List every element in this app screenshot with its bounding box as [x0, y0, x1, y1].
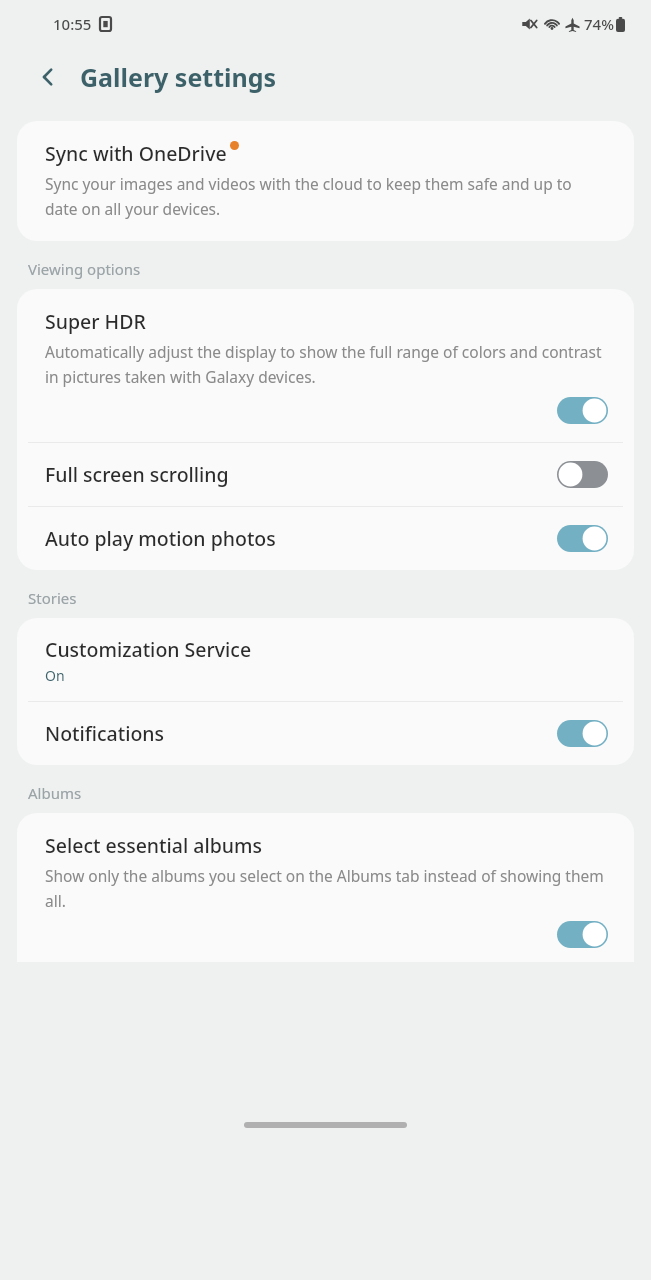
button[interactable]: Toggle on — [557, 720, 608, 747]
staticText: Super HDR — [45, 308, 146, 335]
staticText: On — [45, 666, 65, 685]
staticText: Auto play motion photos — [45, 525, 557, 552]
button[interactable]: Sync with OneDrive — [17, 121, 634, 241]
button[interactable]: Super HDR — [17, 289, 634, 442]
staticText: 10:55 — [53, 14, 92, 34]
staticText: Sync with OneDrive — [45, 140, 227, 167]
staticText: Stories — [28, 588, 77, 608]
button[interactable]: Notifications — [17, 702, 634, 765]
staticText: Viewing options — [28, 259, 141, 279]
staticText: Show only the albums you select on the A… — [45, 865, 608, 911]
staticText: Sync your images and videos with the clo… — [45, 173, 608, 219]
button[interactable]: Auto play motion photos — [17, 507, 634, 570]
staticText: Select essential albums — [45, 832, 262, 859]
staticText: Customization Service — [45, 636, 252, 663]
button[interactable]: Select essential albums — [17, 813, 634, 962]
button[interactable]: Back — [26, 55, 70, 99]
button[interactable]: Toggle on — [557, 525, 608, 552]
button[interactable]: Toggle off — [557, 461, 608, 488]
button[interactable]: Toggle on — [557, 921, 608, 948]
staticText: Notifications — [45, 720, 557, 747]
button[interactable]: Toggle on — [557, 397, 608, 424]
button[interactable]: Customization Service — [17, 618, 634, 701]
staticText: 74% — [584, 14, 614, 34]
staticText: Gallery settings — [80, 60, 277, 94]
staticText: Albums — [28, 783, 82, 803]
staticText: Full screen scrolling — [45, 461, 557, 488]
button[interactable]: Full screen scrolling — [17, 443, 634, 506]
staticText: Automatically adjust the display to show… — [45, 341, 608, 387]
